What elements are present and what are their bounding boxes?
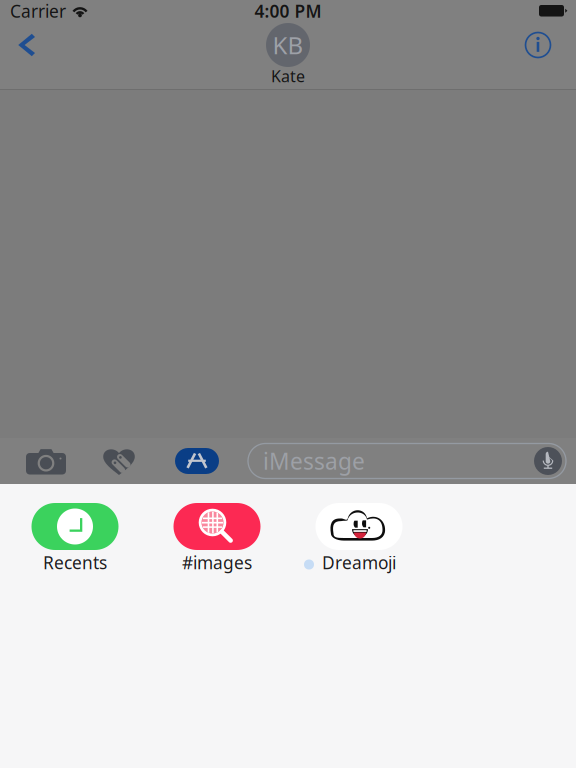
button[interactable]: #images	[146, 503, 288, 574]
staticText: Dreamoji	[322, 551, 396, 574]
button[interactable]: Dreamoji	[288, 503, 430, 574]
button[interactable]: KB	[248, 22, 328, 85]
staticText: iMessage	[263, 446, 365, 476]
staticText: Carrier	[10, 0, 66, 22]
staticText: 4:00 PM	[254, 0, 321, 22]
button[interactable]: Digital Touch	[92, 438, 146, 484]
button[interactable]: Apps	[146, 438, 248, 484]
staticText: Recents	[43, 551, 107, 574]
staticText: KB	[272, 29, 303, 61]
staticText: #images	[182, 551, 252, 574]
button[interactable]: Back	[0, 23, 52, 67]
button[interactable]: iMessage	[248, 443, 566, 478]
button[interactable]: Recents	[4, 503, 146, 574]
staticText: Kate	[271, 65, 305, 87]
button[interactable]: Details	[512, 23, 564, 67]
button[interactable]: Camera	[0, 438, 92, 484]
